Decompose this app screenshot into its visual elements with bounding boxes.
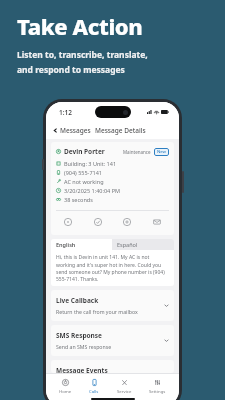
staticText: Live Callback xyxy=(56,296,99,305)
button[interactable]: Settings xyxy=(145,378,170,395)
staticText: Home xyxy=(59,388,72,394)
staticText: (904) 555-7141 xyxy=(64,169,102,176)
button[interactable]: Español xyxy=(112,239,174,250)
button[interactable]: Messages xyxy=(51,124,93,137)
button[interactable]: SMS Response xyxy=(51,325,174,356)
button[interactable]: Stop xyxy=(121,216,133,228)
button[interactable]: Mark as done xyxy=(92,216,104,228)
button[interactable]: Home xyxy=(55,378,76,395)
button[interactable]: Play message xyxy=(62,216,74,228)
button[interactable]: Email xyxy=(151,216,163,228)
button[interactable]: English xyxy=(51,239,112,250)
staticText: Hi, this is Devin in unit 141. My AC is … xyxy=(56,254,169,282)
staticText: Building: 3 Unit: 141 xyxy=(64,160,117,167)
staticText: Take Action xyxy=(17,11,143,41)
button[interactable]: Service xyxy=(113,378,136,395)
button[interactable]: Live Callback xyxy=(51,290,174,321)
staticText: Listen to, transcribe, translate, xyxy=(17,49,148,61)
staticText: 3/20/2025 1:40:04 PM xyxy=(64,187,120,194)
staticText: Send an SMS response xyxy=(56,343,112,350)
staticText: English xyxy=(56,241,76,248)
staticText: Settings xyxy=(149,388,166,394)
staticText: Maintenance xyxy=(123,149,151,155)
staticText: 1:12 xyxy=(59,108,72,117)
staticText: SMS Response xyxy=(56,331,102,340)
staticText: Español xyxy=(117,241,138,248)
staticText: Message Details xyxy=(95,126,146,135)
staticText: AC not working xyxy=(64,178,104,185)
button[interactable]: Calls xyxy=(85,378,103,395)
staticText: Messages xyxy=(60,126,91,135)
staticText: Return the call from your mailbox xyxy=(56,308,138,315)
button[interactable]: New xyxy=(154,148,169,156)
staticText: and respond to messages xyxy=(17,64,125,76)
staticText: New xyxy=(157,149,166,155)
staticText: Service xyxy=(117,388,132,394)
staticText: 38 seconds xyxy=(64,196,93,203)
staticText: Calls xyxy=(89,388,99,394)
staticText: Message Events xyxy=(56,366,108,373)
staticText: Devin Porter xyxy=(64,147,105,156)
